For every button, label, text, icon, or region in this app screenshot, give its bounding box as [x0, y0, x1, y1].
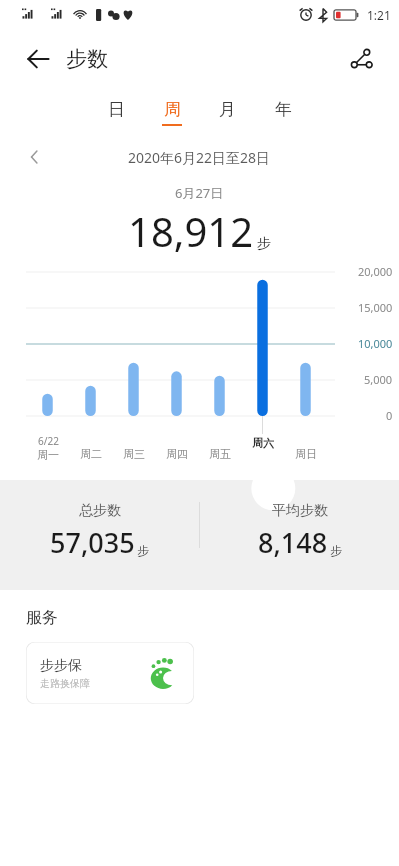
staticText: 周二: [80, 447, 102, 461]
button[interactable]: 总步数: [0, 502, 199, 561]
staticText: 周四: [166, 447, 188, 461]
staticText: 10,000: [358, 336, 393, 351]
staticText: 步: [330, 543, 342, 558]
staticText: 年: [275, 99, 292, 120]
staticText: 步: [137, 543, 149, 558]
button[interactable]: Back: [18, 39, 58, 79]
staticText: 周三: [123, 447, 145, 461]
button[interactable]: 平均步数: [200, 502, 399, 561]
staticText: 步: [257, 235, 271, 253]
staticText: 2020年6月22日至28日: [128, 148, 271, 167]
staticText: 0: [386, 408, 393, 423]
button[interactable]: 日: [96, 88, 136, 136]
staticText: 8,148: [258, 524, 328, 561]
button[interactable]: 年: [263, 88, 303, 136]
staticText: 6月27日: [175, 184, 224, 202]
button[interactable]: Share: [341, 38, 383, 80]
staticText: 总步数: [79, 502, 121, 520]
staticText: 走路换保障: [40, 677, 90, 690]
staticText: 月: [219, 99, 236, 120]
button[interactable]: 步步保: [26, 642, 194, 704]
staticText: 步数: [66, 46, 108, 72]
staticText: 周一: [37, 448, 59, 462]
staticText: 周六: [252, 436, 274, 450]
button[interactable]: 周: [152, 88, 192, 136]
staticText: 18,912: [128, 204, 254, 258]
staticText: 6/22: [38, 434, 59, 448]
staticText: 57,035: [50, 524, 135, 561]
staticText: 周五: [209, 447, 231, 461]
staticText: 周日: [295, 447, 317, 461]
staticText: 5,000: [364, 372, 393, 387]
staticText: 15,000: [358, 300, 393, 315]
staticText: 服务: [26, 608, 58, 628]
staticText: 步步保: [40, 657, 82, 675]
staticText: 周: [164, 99, 181, 120]
button[interactable]: Previous week: [18, 140, 52, 174]
button[interactable]: 月: [207, 88, 247, 136]
staticText: 20,000: [358, 264, 393, 279]
staticText: 日: [108, 99, 125, 120]
staticText: 平均步数: [272, 502, 328, 520]
staticText: 1:21: [367, 7, 391, 23]
